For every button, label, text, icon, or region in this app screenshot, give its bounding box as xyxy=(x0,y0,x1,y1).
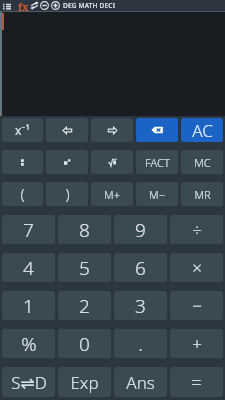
staticText: M+ xyxy=(104,187,120,202)
button[interactable]: Decrease font size xyxy=(39,0,50,11)
button[interactable]: = xyxy=(170,367,223,397)
button[interactable]: Swap xyxy=(29,0,39,11)
button[interactable]: Move cursor left xyxy=(46,118,88,142)
staticText: % xyxy=(21,331,37,357)
button[interactable]: DEG MATH DECI xyxy=(63,1,116,10)
button[interactable]: 3 xyxy=(114,291,167,320)
button[interactable]: Power xyxy=(46,150,88,174)
button[interactable]: AC xyxy=(181,118,223,142)
button[interactable]: 8 xyxy=(58,215,111,244)
staticText: fx xyxy=(18,0,29,11)
button[interactable]: Ans xyxy=(114,367,167,397)
button[interactable]: MR xyxy=(181,182,223,206)
button[interactable]: ( xyxy=(2,182,43,206)
button[interactable]: ÷ xyxy=(170,215,223,244)
button[interactable]: Exp xyxy=(58,367,111,397)
staticText: x⁻¹ xyxy=(15,122,30,138)
button[interactable]: 9 xyxy=(114,215,167,244)
staticText: ÷ xyxy=(192,218,202,241)
staticText: 4 xyxy=(23,255,34,281)
button[interactable]: Functions xyxy=(18,0,29,11)
staticText: ) xyxy=(65,184,70,204)
staticText: ( xyxy=(20,184,25,204)
button[interactable]: Move cursor right xyxy=(91,118,133,142)
button[interactable]: M+ xyxy=(91,182,133,206)
button[interactable]: x⁻¹ xyxy=(2,118,43,142)
staticText: + xyxy=(192,332,202,355)
staticText: M− xyxy=(149,187,165,202)
button[interactable]: Fraction xyxy=(2,150,43,174)
staticText: 2 xyxy=(79,293,90,319)
button[interactable]: S⇌D xyxy=(2,367,55,397)
staticText: 9 xyxy=(135,217,146,243)
other: Move cursor right xyxy=(107,125,118,136)
staticText: 8 xyxy=(79,217,90,243)
staticText: . xyxy=(138,331,143,357)
button[interactable]: + xyxy=(170,329,223,358)
button[interactable]: 6 xyxy=(114,253,167,282)
staticText: = xyxy=(191,369,202,395)
button[interactable]: 1 xyxy=(2,291,55,320)
other: Move cursor left xyxy=(62,125,73,136)
staticText: 5 xyxy=(79,255,90,281)
other: Square root xyxy=(108,158,117,167)
button[interactable]: 2 xyxy=(58,291,111,320)
staticText: DEG MATH DECI xyxy=(63,1,116,10)
staticText: 6 xyxy=(135,255,146,281)
button[interactable]: × xyxy=(170,253,223,282)
other: Backspace xyxy=(150,123,164,137)
button[interactable]: M− xyxy=(136,182,178,206)
button[interactable]: Square root xyxy=(91,150,133,174)
staticText: × xyxy=(192,256,202,279)
button[interactable]: % xyxy=(2,329,55,358)
button[interactable]: 5 xyxy=(58,253,111,282)
button[interactable]: History xyxy=(1,0,12,11)
other: Power xyxy=(62,157,72,167)
button[interactable]: − xyxy=(170,291,223,320)
button[interactable]: . xyxy=(114,329,167,358)
staticText: 0 xyxy=(79,331,90,357)
staticText: FACT xyxy=(145,155,170,170)
button[interactable]: MC xyxy=(181,150,223,174)
staticText: MR xyxy=(194,187,211,202)
button[interactable]: Backspace xyxy=(136,118,178,142)
button[interactable]: FACT xyxy=(136,150,178,174)
staticText: − xyxy=(192,294,202,317)
button[interactable]: Increase font size xyxy=(50,0,61,11)
staticText: AC xyxy=(192,119,213,142)
other: Fraction xyxy=(17,157,28,168)
button[interactable]: ) xyxy=(46,182,88,206)
button[interactable]: 0 xyxy=(58,329,111,358)
button[interactable]: 4 xyxy=(2,253,55,282)
staticText: Ans xyxy=(126,371,155,394)
staticText: 7 xyxy=(23,217,34,243)
staticText: 1 xyxy=(23,293,34,319)
staticText: MC xyxy=(194,155,211,170)
staticText: S⇌D xyxy=(11,371,47,394)
button[interactable]: 7 xyxy=(2,215,55,244)
staticText: Exp xyxy=(70,371,99,394)
staticText: 3 xyxy=(135,293,146,319)
